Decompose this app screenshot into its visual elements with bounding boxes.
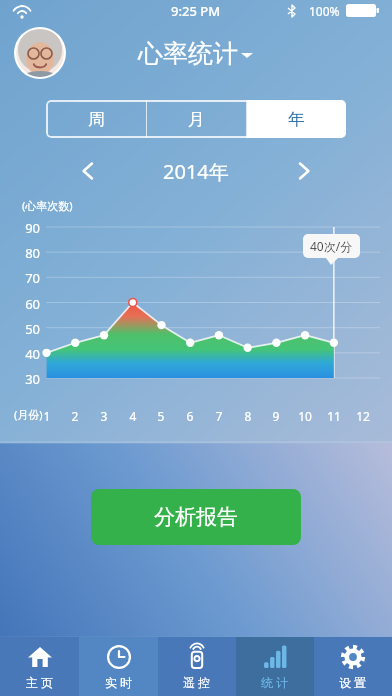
staticText: 3 [94, 408, 114, 424]
staticText: 11 [324, 408, 344, 424]
staticText: 分析报告 [154, 504, 238, 530]
staticText: 设 置 [339, 674, 367, 690]
button[interactable]: 设 置 [314, 637, 392, 696]
staticText: 7 [209, 408, 229, 424]
button[interactable]: 周 [46, 100, 146, 138]
staticText: (心率次数) [22, 198, 73, 213]
staticText: 70 [8, 269, 40, 287]
staticText: (月份) [14, 407, 43, 422]
staticText: 年 [288, 109, 305, 130]
staticText: 心率统计 [138, 38, 238, 69]
staticText: 60 [8, 295, 40, 313]
staticText: 2014年 [163, 158, 229, 185]
staticText: 40 [8, 345, 40, 363]
staticText: 主 页 [26, 674, 54, 690]
button[interactable]: 统 计 [236, 637, 314, 696]
button[interactable]: 心率统计 [138, 38, 254, 69]
staticText: 统 计 [261, 674, 289, 690]
staticText: 50 [8, 320, 40, 338]
staticText: 90 [8, 219, 40, 237]
staticText: 6 [180, 408, 200, 424]
staticText: 40次/分 [310, 238, 353, 254]
staticText: 9 [266, 408, 286, 424]
staticText: 实 时 [105, 674, 133, 690]
staticText: 月 [188, 109, 205, 130]
button[interactable]: Previous year [70, 153, 106, 189]
button[interactable]: 遥 控 [158, 637, 236, 696]
staticText: 4 [123, 408, 143, 424]
staticText: 周 [88, 109, 105, 130]
button[interactable]: 实 时 [79, 637, 158, 696]
button[interactable]: 月 [147, 100, 246, 138]
staticText: 2 [65, 408, 85, 424]
staticText: 遥 控 [183, 674, 211, 690]
staticText: 80 [8, 244, 40, 262]
button[interactable]: Next year [286, 153, 322, 189]
staticText: 100% [309, 3, 340, 19]
staticText: 30 [8, 370, 40, 388]
button[interactable]: 年 [247, 100, 346, 138]
staticText: 1 [37, 408, 57, 424]
button[interactable]: Profile [14, 27, 66, 79]
staticText: 12 [353, 408, 373, 424]
staticText: 5 [151, 408, 171, 424]
staticText: 10 [295, 408, 315, 424]
staticText: 8 [238, 408, 258, 424]
button[interactable]: 主 页 [0, 637, 79, 696]
staticText: 9:25 PM [171, 2, 221, 20]
button[interactable]: 分析报告 [91, 489, 301, 545]
